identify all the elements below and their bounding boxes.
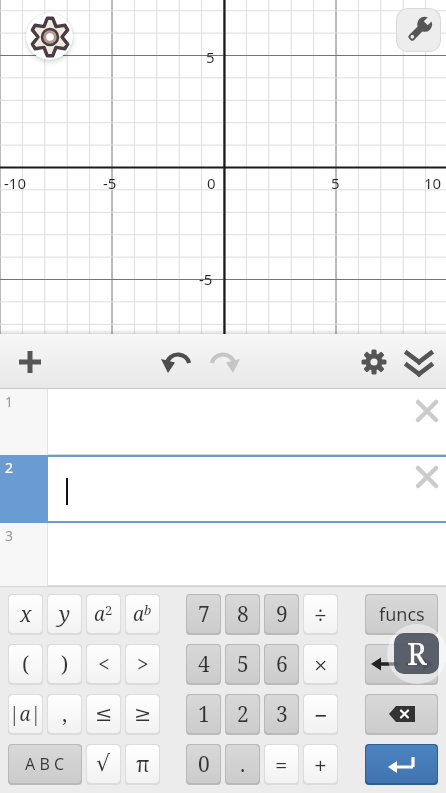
button[interactable]: a2: [87, 595, 120, 633]
button[interactable]: <: [87, 645, 120, 683]
staticText: 7: [198, 600, 210, 629]
button[interactable]: [366, 695, 437, 733]
staticText: ×: [314, 648, 328, 681]
staticText: A B C: [25, 753, 65, 775]
staticText: 1: [198, 700, 210, 729]
button[interactable]: x: [9, 595, 42, 633]
staticText: π: [136, 750, 150, 779]
staticText: 10: [424, 173, 442, 193]
staticText: 6: [276, 650, 288, 679]
staticText: ): [61, 650, 69, 679]
staticText: 8: [237, 600, 249, 629]
staticText: ≥: [134, 702, 152, 726]
button[interactable]: 2: [226, 695, 259, 733]
button[interactable]: R: [394, 633, 439, 674]
staticText: .: [240, 750, 246, 779]
button[interactable]: 0: [187, 745, 220, 783]
button[interactable]: ÷: [304, 595, 337, 633]
staticText: R: [407, 633, 427, 674]
staticText: 3: [276, 700, 288, 729]
staticText: ≤: [95, 702, 113, 726]
button[interactable]: [0, 334, 55, 389]
staticText: a2: [94, 601, 113, 627]
button[interactable]: |a|: [9, 695, 42, 733]
staticText: x: [20, 600, 32, 629]
staticText: <: [98, 650, 110, 679]
button[interactable]: 5: [226, 645, 259, 683]
staticText: ,: [62, 700, 68, 729]
button[interactable]: ): [48, 645, 81, 683]
button[interactable]: [396, 334, 446, 384]
staticText: -5: [103, 173, 117, 193]
button[interactable]: ≥: [126, 695, 159, 733]
staticText: =: [275, 749, 288, 779]
button[interactable]: (: [9, 645, 42, 683]
button[interactable]: [150, 334, 200, 384]
button[interactable]: .: [226, 745, 259, 783]
button[interactable]: ab: [126, 595, 159, 633]
button[interactable]: [346, 334, 396, 384]
button[interactable]: +: [304, 745, 337, 783]
staticText: 5: [237, 650, 249, 679]
button[interactable]: >: [126, 645, 159, 683]
staticText: 3: [5, 526, 14, 545]
button[interactable]: y: [48, 595, 81, 633]
button[interactable]: 4: [187, 645, 220, 683]
staticText: 2: [237, 700, 249, 729]
button[interactable]: 8: [226, 595, 259, 633]
button[interactable]: 2: [0, 455, 446, 523]
button[interactable]: funcs: [366, 595, 437, 633]
button[interactable]: 1: [0, 389, 446, 455]
staticText: (: [22, 650, 30, 679]
button[interactable]: [200, 334, 250, 384]
button[interactable]: 6: [265, 645, 298, 683]
button[interactable]: =: [265, 745, 298, 783]
button[interactable]: 9: [265, 595, 298, 633]
button[interactable]: 3: [0, 523, 446, 586]
staticText: 2: [5, 458, 14, 477]
button[interactable]: [366, 745, 437, 783]
button[interactable]: A B C: [9, 745, 81, 783]
staticText: ÷: [314, 599, 327, 630]
staticText: y: [59, 600, 71, 629]
button[interactable]: −: [304, 695, 337, 733]
button[interactable]: 7: [187, 595, 220, 633]
staticText: 9: [276, 600, 288, 629]
staticText: 0: [198, 750, 210, 779]
staticText: 1: [5, 392, 14, 411]
button[interactable]: 1: [187, 695, 220, 733]
staticText: 5: [331, 173, 340, 193]
staticText: |a|: [9, 701, 42, 727]
button[interactable]: [397, 9, 440, 51]
staticText: funcs: [379, 602, 425, 627]
staticText: √: [96, 751, 111, 777]
button[interactable]: [410, 394, 444, 428]
staticText: 4: [198, 650, 210, 679]
button[interactable]: ≤: [87, 695, 120, 733]
staticText: 0: [207, 173, 216, 193]
button[interactable]: ×: [304, 645, 337, 683]
staticText: -10: [4, 173, 26, 193]
staticText: 5: [206, 47, 215, 67]
button[interactable]: [26, 13, 73, 60]
button[interactable]: √: [87, 745, 120, 783]
staticText: ab: [133, 601, 152, 627]
button[interactable]: 3: [265, 695, 298, 733]
staticText: −: [314, 699, 328, 730]
button[interactable]: ,: [48, 695, 81, 733]
button[interactable]: [366, 645, 437, 683]
staticText: +: [314, 749, 327, 780]
button[interactable]: [410, 460, 444, 494]
button[interactable]: π: [126, 745, 159, 783]
staticText: -5: [199, 269, 213, 289]
staticText: >: [137, 650, 149, 679]
